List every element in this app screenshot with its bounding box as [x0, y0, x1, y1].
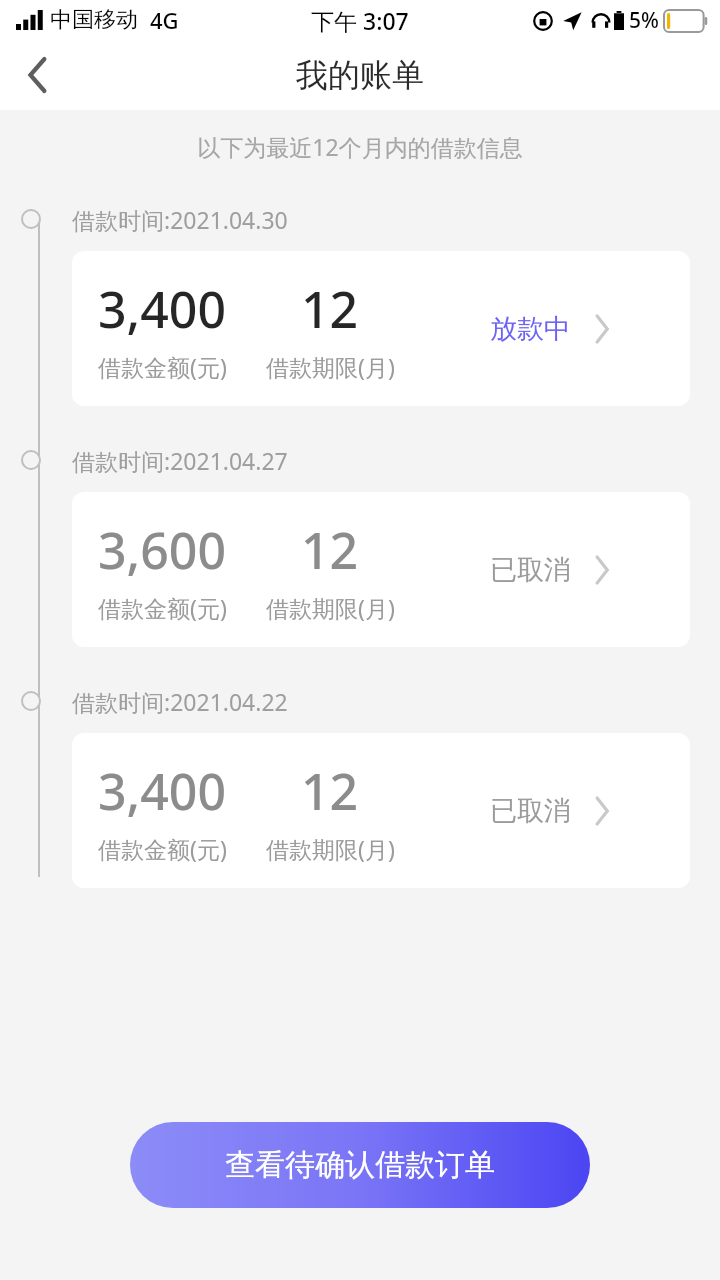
staticText: 3,600: [98, 516, 227, 584]
staticText: 借款金额(元): [98, 833, 227, 864]
staticText: 12: [301, 275, 359, 343]
button[interactable]: 3,600: [72, 492, 690, 647]
staticText: 12: [301, 757, 359, 825]
staticText: 以下为最近12个月内的借款信息: [0, 131, 720, 162]
staticText: 放款中: [490, 312, 571, 346]
button[interactable]: 查看待确认借款订单: [130, 1122, 590, 1208]
staticText: 已取消: [490, 794, 571, 828]
button[interactable]: 3,400: [72, 251, 690, 406]
staticText: 中国移动: [50, 6, 138, 34]
button[interactable]: 3,400: [72, 733, 690, 888]
staticText: 我的账单: [296, 55, 424, 95]
staticText: 借款期限(月): [266, 833, 395, 864]
staticText: 下午 3:07: [311, 5, 409, 36]
staticText: 借款时间:2021.04.27: [72, 445, 288, 476]
staticText: 借款时间:2021.04.22: [72, 686, 288, 717]
staticText: 借款期限(月): [266, 351, 395, 382]
staticText: 已取消: [490, 553, 571, 587]
staticText: 12: [301, 516, 359, 584]
staticText: 借款期限(月): [266, 592, 395, 623]
staticText: 查看待确认借款订单: [225, 1146, 495, 1184]
staticText: 4G: [150, 5, 179, 35]
staticText: 借款金额(元): [98, 351, 227, 382]
staticText: 借款时间:2021.04.30: [72, 204, 288, 235]
staticText: 5%: [629, 6, 659, 35]
button[interactable]: 返回: [0, 40, 76, 110]
staticText: 借款金额(元): [98, 592, 227, 623]
staticText: 3,400: [98, 275, 227, 343]
staticText: 3,400: [98, 757, 227, 825]
